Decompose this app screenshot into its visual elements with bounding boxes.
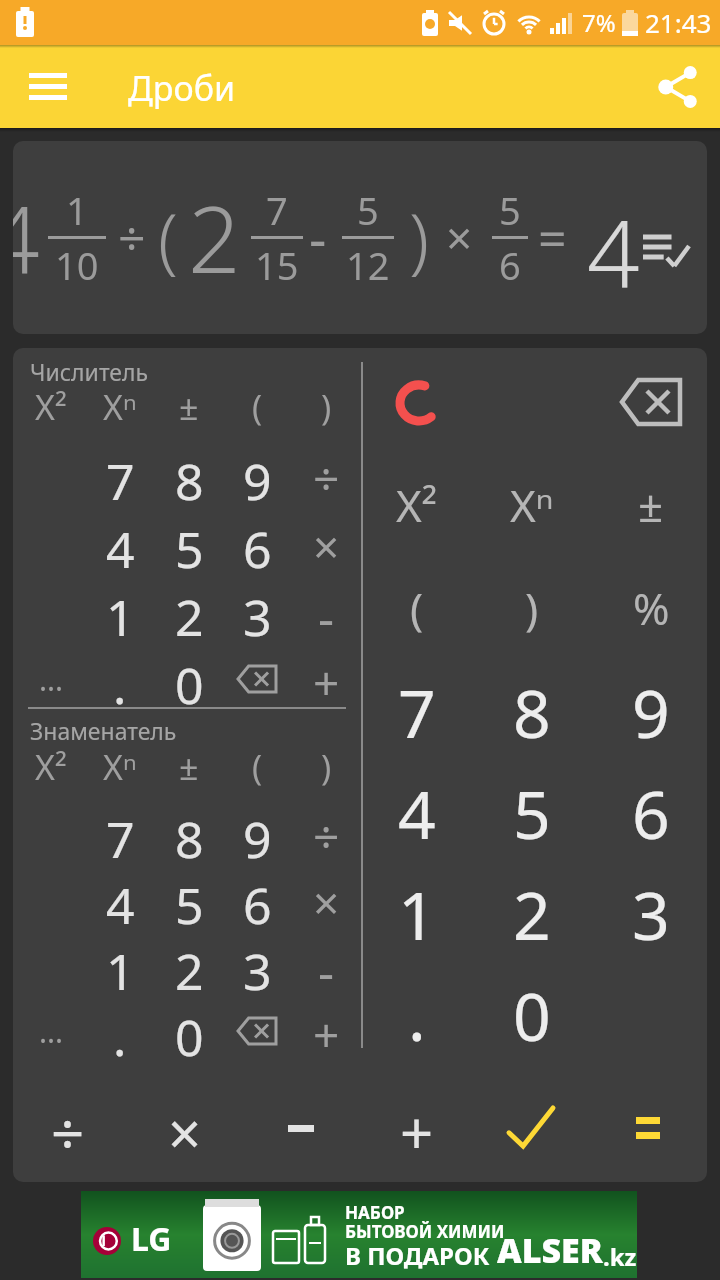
button[interactable]: 1 <box>89 937 151 993</box>
staticText: ... <box>39 1011 64 1052</box>
staticText: 8 <box>175 805 204 861</box>
staticText: 1 <box>106 937 135 993</box>
button[interactable]: 0 <box>158 1003 220 1059</box>
button[interactable]: ± <box>606 465 696 545</box>
button[interactable]: × <box>295 515 357 571</box>
button[interactable]: 6 <box>226 871 288 927</box>
button[interactable] <box>256 1093 346 1163</box>
button[interactable]: ( <box>226 739 288 795</box>
button[interactable]: 3 <box>226 583 288 639</box>
button[interactable]: ÷ <box>23 1093 113 1163</box>
button[interactable]: × <box>140 1093 230 1163</box>
staticText: 9 <box>243 447 272 503</box>
staticText: 5 <box>499 184 521 236</box>
staticText: 1 <box>398 869 436 953</box>
button[interactable]: X² <box>20 379 82 435</box>
button[interactable]: Xⁿ <box>487 465 577 545</box>
staticText: 0 <box>175 1003 204 1059</box>
button[interactable]: 3 <box>226 937 288 993</box>
button[interactable]: 5 <box>158 515 220 571</box>
staticText: 6 <box>632 768 670 852</box>
button[interactable]: ) <box>487 568 577 648</box>
staticText: - <box>318 937 335 993</box>
button[interactable]: LG <box>81 1191 637 1278</box>
button[interactable]: 7 <box>372 667 462 751</box>
button[interactable]: × <box>295 871 357 927</box>
button[interactable]: 8 <box>158 805 220 861</box>
button[interactable]: . <box>89 1003 151 1059</box>
button[interactable]: X² <box>372 465 462 545</box>
button[interactable]: X² <box>20 739 82 795</box>
button[interactable]: 8 <box>487 667 577 751</box>
button[interactable] <box>650 59 706 115</box>
button[interactable]: 4 <box>372 768 462 852</box>
button[interactable]: - <box>295 937 357 993</box>
button[interactable]: ... <box>20 1003 82 1059</box>
staticText: . <box>113 651 127 707</box>
button[interactable]: - <box>295 583 357 639</box>
button[interactable] <box>606 362 696 442</box>
button[interactable]: ± <box>158 379 220 435</box>
staticText: 3 <box>243 583 272 639</box>
button[interactable]: 5 <box>158 871 220 927</box>
staticText: ÷ <box>51 1093 85 1163</box>
button[interactable] <box>372 362 462 442</box>
button[interactable] <box>226 1003 288 1059</box>
staticText: 3 <box>632 869 670 953</box>
button[interactable] <box>18 59 78 115</box>
staticText: 8 <box>175 447 204 503</box>
staticText: 10 <box>55 239 99 291</box>
button[interactable]: 2 <box>158 937 220 993</box>
button[interactable]: . <box>89 651 151 707</box>
button[interactable]: 1 <box>372 869 462 953</box>
button[interactable]: + <box>372 1093 462 1163</box>
button[interactable]: 0 <box>158 651 220 707</box>
button[interactable]: 7 <box>89 447 151 503</box>
button[interactable]: 6 <box>226 515 288 571</box>
button[interactable]: ( <box>226 379 288 435</box>
staticText: ( <box>158 189 178 287</box>
button[interactable]: + <box>295 651 357 707</box>
staticText: 7 <box>266 184 288 236</box>
button[interactable]: ( <box>372 568 462 648</box>
button[interactable]: ÷ <box>295 805 357 861</box>
button[interactable]: ... <box>20 651 82 707</box>
button[interactable]: ) <box>295 379 357 435</box>
button[interactable]: 3 <box>606 869 696 953</box>
button[interactable]: 6 <box>606 768 696 852</box>
staticText: 6 <box>499 239 521 291</box>
button[interactable]: + <box>295 1003 357 1059</box>
button[interactable] <box>226 651 288 707</box>
button[interactable]: 9 <box>606 667 696 751</box>
button[interactable]: 4 <box>89 871 151 927</box>
button[interactable]: Xⁿ <box>89 739 151 795</box>
button[interactable]: . <box>372 970 462 1054</box>
button[interactable]: ) <box>295 739 357 795</box>
button[interactable]: 0 <box>487 970 577 1054</box>
staticText: . <box>408 970 426 1054</box>
staticText: ) <box>409 189 429 287</box>
staticText: + <box>400 1093 434 1163</box>
staticText: ) <box>525 578 539 638</box>
button[interactable]: 8 <box>158 447 220 503</box>
staticText: 2 <box>175 937 204 993</box>
button[interactable] <box>641 231 691 271</box>
button[interactable]: 2 <box>487 869 577 953</box>
button[interactable]: ± <box>158 739 220 795</box>
button[interactable]: 7 <box>89 805 151 861</box>
button[interactable] <box>603 1093 693 1163</box>
button[interactable]: 4 <box>89 515 151 571</box>
button[interactable]: ÷ <box>295 447 357 503</box>
button[interactable]: Xⁿ <box>89 379 151 435</box>
staticText: 2 <box>175 583 204 639</box>
button[interactable]: 1 <box>89 583 151 639</box>
button[interactable]: 2 <box>158 583 220 639</box>
button[interactable]: % <box>606 568 696 648</box>
button[interactable]: 9 <box>226 805 288 861</box>
button[interactable]: 5 <box>487 768 577 852</box>
staticText: 5 <box>513 768 551 852</box>
staticText: 7 <box>106 805 135 861</box>
button[interactable]: 9 <box>226 447 288 503</box>
staticText: Xⁿ <box>103 744 137 790</box>
button[interactable] <box>486 1093 576 1163</box>
